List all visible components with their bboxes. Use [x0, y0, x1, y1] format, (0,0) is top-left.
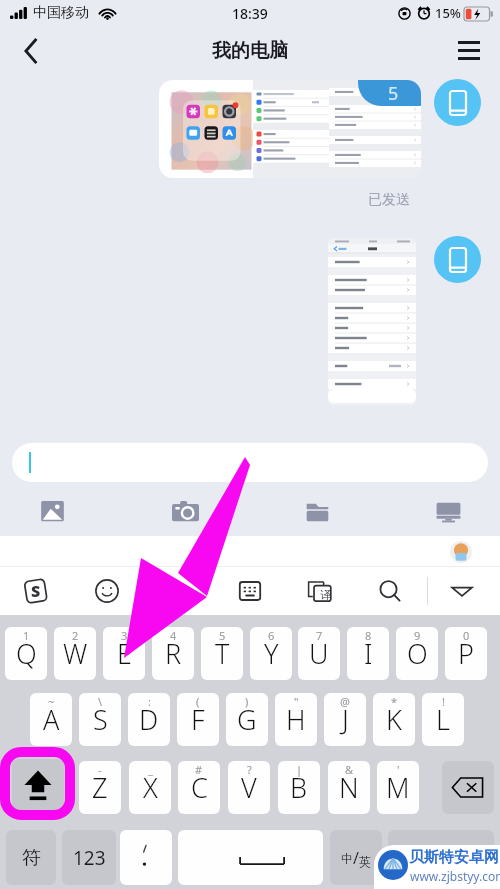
staticText: 6: [268, 628, 275, 643]
staticText: R: [165, 635, 182, 672]
staticText: ): [245, 694, 249, 709]
staticText: X: [143, 769, 158, 806]
button[interactable]: ): [226, 693, 268, 746]
button[interactable]: 4: [152, 627, 194, 680]
button[interactable]: Collapse: [438, 567, 486, 615]
staticText: 3: [121, 628, 128, 643]
staticText: 符: [22, 846, 41, 870]
button[interactable]: ': [377, 761, 419, 814]
button[interactable]: Folder: [287, 489, 347, 535]
staticText: 8: [365, 628, 372, 643]
button[interactable]: 3: [103, 627, 145, 680]
staticText: 已发送: [368, 191, 410, 209]
button[interactable]: Menu: [446, 28, 492, 74]
staticText: 英: [359, 854, 371, 869]
button[interactable]: [328, 238, 416, 405]
staticText: B: [290, 769, 308, 806]
staticText: U: [309, 635, 329, 672]
button[interactable]: 2: [54, 627, 96, 680]
button[interactable]: Image: [22, 489, 82, 535]
staticText: N: [339, 769, 359, 806]
staticText: 18:39: [232, 4, 268, 23]
staticText: W: [63, 635, 88, 672]
button[interactable]: @: [324, 693, 366, 746]
staticText: ": [294, 694, 299, 709]
staticText: Z: [92, 769, 108, 806]
button[interactable]: Emoji: [83, 567, 131, 615]
button[interactable]: !: [422, 693, 464, 746]
button[interactable]: #: [178, 761, 220, 814]
staticText: H: [286, 701, 306, 738]
staticText: 中: [341, 851, 353, 866]
button[interactable]: 符: [6, 830, 56, 885]
staticText: Q: [16, 635, 37, 672]
button[interactable]: Backspace: [442, 761, 494, 814]
staticText: www.zjbstyy.com: [410, 868, 500, 884]
staticText: -: [98, 762, 102, 777]
staticText: P: [458, 635, 474, 672]
staticText: 15%: [435, 4, 461, 22]
staticText: 中国移动: [33, 4, 89, 22]
button[interactable]: Device: [434, 79, 481, 126]
staticText: A: [43, 701, 60, 738]
staticText: M: [386, 769, 410, 806]
button[interactable]: Computer: [418, 489, 478, 535]
staticText: S: [93, 701, 108, 738]
button[interactable]: ~: [30, 693, 72, 746]
staticText: S: [31, 580, 41, 602]
button[interactable]: 1: [5, 627, 47, 680]
button[interactable]: ": [275, 693, 317, 746]
staticText: ?: [247, 762, 252, 777]
staticText: G: [237, 701, 257, 738]
button[interactable]: Camera: [155, 489, 215, 535]
button[interactable]: :: [128, 693, 170, 746]
staticText: Y: [264, 635, 279, 672]
button[interactable]: |: [278, 761, 320, 814]
button[interactable]: \: [79, 693, 121, 746]
staticText: E: [117, 635, 132, 672]
staticText: L: [436, 701, 450, 738]
staticText: 贝斯特安卓网: [409, 848, 499, 867]
button[interactable]: &: [328, 761, 370, 814]
button[interactable]: 123: [62, 830, 116, 885]
staticText: 9: [414, 628, 421, 643]
button[interactable]: 0: [445, 627, 487, 680]
staticText: /: [353, 847, 359, 869]
button[interactable]: [388, 830, 494, 885]
button[interactable]: 9: [396, 627, 438, 680]
staticText: 5: [219, 628, 226, 643]
button[interactable]: [12, 443, 488, 482]
staticText: #: [195, 762, 203, 777]
button[interactable]: 5: [201, 627, 243, 680]
button[interactable]: Shift: [12, 759, 64, 812]
button[interactable]: _: [129, 761, 171, 814]
button[interactable]: 6: [250, 627, 292, 680]
button[interactable]: [178, 830, 323, 885]
button[interactable]: 5: [159, 80, 421, 178]
button[interactable]: [330, 830, 382, 885]
staticText: (: [196, 694, 200, 709]
button[interactable]: Device: [434, 236, 481, 283]
staticText: :: [148, 694, 151, 709]
staticText: ': [397, 762, 400, 777]
staticText: 译: [320, 588, 331, 602]
staticText: 123: [73, 845, 106, 871]
staticText: 5: [388, 81, 399, 106]
staticText: 4: [170, 628, 177, 643]
button[interactable]: -: [79, 761, 121, 814]
staticText: ~: [48, 694, 55, 709]
button[interactable]: Keyboard: [226, 567, 274, 615]
staticText: 0: [463, 628, 470, 643]
button[interactable]: Sogou: [12, 567, 60, 615]
button[interactable]: [120, 830, 172, 885]
button[interactable]: (: [177, 693, 219, 746]
button[interactable]: Search: [366, 567, 414, 615]
button[interactable]: Translate: [296, 567, 344, 615]
button[interactable]: 7: [298, 627, 340, 680]
staticText: 我的电脑: [212, 39, 288, 63]
button[interactable]: Back: [8, 28, 54, 74]
button[interactable]: 8: [347, 627, 389, 680]
staticText: I: [364, 635, 373, 672]
button[interactable]: *: [373, 693, 415, 746]
button[interactable]: ?: [228, 761, 270, 814]
